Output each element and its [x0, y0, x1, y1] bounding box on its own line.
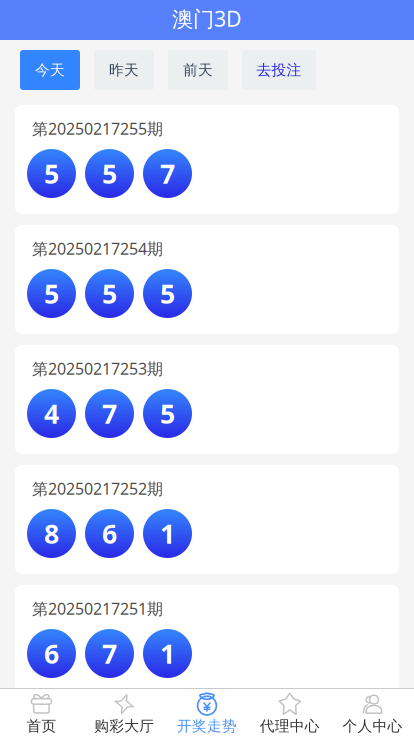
staticText: 5: [160, 396, 175, 431]
staticText: 去投注: [256, 61, 301, 79]
staticText: 1: [160, 636, 175, 671]
button[interactable]: 今天: [20, 50, 80, 90]
staticText: 第20250217250期: [32, 718, 163, 736]
button[interactable]: 代理中心: [248, 688, 331, 736]
staticText: 首页: [26, 717, 56, 735]
staticText: 第20250217253期: [32, 358, 163, 379]
button[interactable]: 第20250217252期: [15, 465, 399, 574]
button[interactable]: 第20250217255期: [15, 105, 399, 214]
staticText: 7: [102, 636, 117, 671]
button[interactable]: 购彩大厅: [83, 688, 166, 736]
staticText: 昨天: [109, 61, 139, 79]
staticText: 购彩大厅: [94, 717, 154, 735]
staticText: 7: [102, 396, 117, 431]
staticText: 8: [44, 516, 59, 551]
staticText: 澳门3D: [172, 4, 242, 33]
staticText: 第20250217255期: [32, 118, 163, 139]
staticText: 7: [160, 156, 175, 191]
staticText: 5: [44, 276, 59, 311]
staticText: 第20250217251期: [32, 598, 163, 619]
staticText: 6: [102, 516, 117, 551]
staticText: 5: [102, 156, 117, 191]
button[interactable]: 前天: [168, 50, 228, 90]
button[interactable]: 第20250217253期: [15, 345, 399, 454]
staticText: 5: [102, 276, 117, 311]
staticText: 5: [44, 156, 59, 191]
staticText: 今天: [35, 61, 65, 79]
staticText: 第20250217254期: [32, 238, 163, 259]
staticText: 5: [160, 276, 175, 311]
staticText: 代理中心: [260, 717, 320, 735]
button[interactable]: 第20250217254期: [15, 225, 399, 334]
button[interactable]: 第20250217250期: [15, 705, 399, 736]
staticText: 4: [44, 396, 59, 431]
staticText: 第20250217252期: [32, 478, 163, 499]
staticText: 6: [44, 636, 59, 671]
button[interactable]: 开奖走势: [166, 688, 248, 736]
staticText: 1: [160, 516, 175, 551]
staticText: 开奖走势: [177, 717, 237, 735]
button[interactable]: 个人中心: [331, 688, 414, 736]
button[interactable]: 第20250217251期: [15, 585, 399, 694]
button[interactable]: 去投注: [242, 50, 316, 90]
button[interactable]: 首页: [0, 688, 83, 736]
staticText: 个人中心: [343, 717, 403, 735]
button[interactable]: 昨天: [94, 50, 154, 90]
staticText: 前天: [183, 61, 213, 79]
